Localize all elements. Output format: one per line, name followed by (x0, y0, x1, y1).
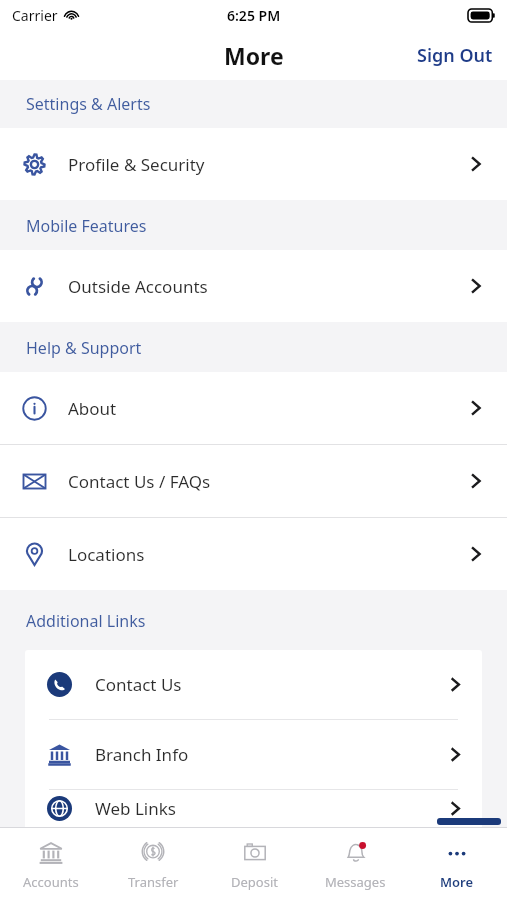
staticText: Settings & Alerts (26, 93, 151, 115)
staticText: Messages (325, 873, 386, 891)
staticText: Web Links (95, 797, 176, 820)
button[interactable]: More (406, 828, 507, 900)
staticText: Additional Links (26, 610, 146, 632)
button[interactable]: Transfer (102, 828, 204, 900)
staticText: Carrier (12, 6, 58, 25)
button[interactable]: Accounts (0, 828, 102, 900)
button[interactable]: Branch Info (25, 720, 482, 789)
staticText: More (224, 40, 284, 71)
staticText: Accounts (23, 873, 79, 891)
staticText: About (68, 397, 117, 420)
staticText: Locations (68, 543, 145, 566)
staticText: 6:25 PM (227, 6, 281, 25)
button[interactable]: Deposit (204, 828, 305, 900)
staticText: Outside Accounts (68, 275, 208, 298)
staticText: Contact Us / FAQs (68, 470, 211, 493)
button[interactable]: About (0, 372, 507, 444)
staticText: Sign Out (417, 43, 493, 68)
button[interactable]: Contact Us (25, 650, 482, 719)
button[interactable]: Profile & Security (0, 128, 507, 200)
staticText: Deposit (231, 873, 278, 891)
staticText: Profile & Security (68, 153, 205, 176)
staticText: Transfer (128, 873, 179, 891)
button[interactable]: Sign Out (403, 35, 507, 76)
staticText: More (440, 873, 474, 891)
staticText: Contact Us (95, 673, 182, 696)
button[interactable]: Contact Us / FAQs (0, 445, 507, 517)
button[interactable]: Messages (305, 828, 406, 900)
button[interactable]: Web Links (25, 790, 482, 827)
staticText: Mobile Features (26, 215, 147, 237)
staticText: Branch Info (95, 743, 189, 766)
button[interactable]: Locations (0, 518, 507, 590)
staticText: Help & Support (26, 337, 142, 359)
button[interactable]: Outside Accounts (0, 250, 507, 322)
